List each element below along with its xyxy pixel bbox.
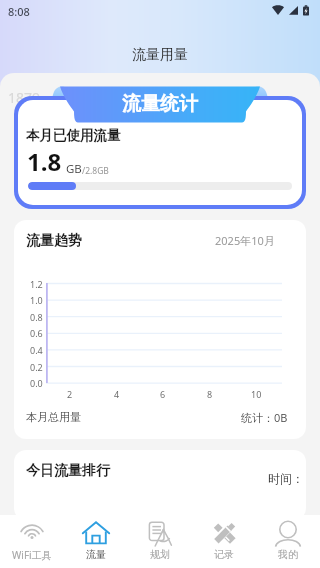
- staticText: 今日流量排行: [26, 462, 110, 480]
- staticText: 本月总用量: [26, 410, 81, 424]
- staticText: 0.4: [30, 344, 43, 356]
- staticText: 流量用量: [132, 46, 188, 64]
- staticText: 流量趋势: [26, 232, 82, 250]
- staticText: GB: [66, 161, 82, 177]
- staticText: 流量统计: [122, 92, 198, 116]
- staticText: 1.8: [27, 145, 62, 178]
- staticText: 记录: [214, 548, 234, 561]
- staticText: 0.8: [30, 311, 43, 323]
- staticText: 1879: [8, 88, 41, 107]
- staticText: 规划: [150, 548, 170, 561]
- button[interactable]: 规划: [128, 515, 192, 568]
- staticText: 统计：0B: [241, 410, 288, 425]
- staticText: 10: [251, 388, 262, 400]
- staticText: 8:08: [8, 4, 30, 19]
- staticText: 本月已使用流量: [26, 127, 121, 144]
- staticText: 我的: [278, 548, 298, 561]
- staticText: 2: [67, 388, 73, 400]
- button[interactable]: WiFi工具: [0, 515, 64, 568]
- staticText: 流量: [86, 548, 106, 561]
- staticText: /2.8GB: [82, 165, 109, 177]
- staticText: 0.6: [30, 327, 43, 339]
- staticText: 6: [160, 388, 166, 400]
- staticText: 8: [207, 388, 213, 400]
- staticText: 2025年10月: [215, 233, 275, 248]
- button[interactable]: 记录: [192, 515, 256, 568]
- staticText: 0.0: [30, 377, 43, 389]
- staticText: 时间：: [268, 471, 304, 486]
- staticText: WiFi工具: [12, 548, 52, 562]
- staticText: MB: [41, 94, 56, 106]
- button[interactable]: 流量: [64, 515, 128, 568]
- staticText: 4: [114, 388, 120, 400]
- staticText: 1.0: [30, 294, 43, 306]
- button[interactable]: 我的: [256, 515, 320, 568]
- staticText: 1.2: [30, 278, 43, 290]
- staticText: 0.2: [30, 361, 43, 373]
